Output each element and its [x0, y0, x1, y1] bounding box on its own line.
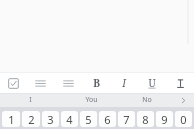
button[interactable]: 3 [42, 111, 59, 127]
button[interactable]: You [61, 93, 122, 107]
staticText: 9 [161, 112, 168, 127]
button[interactable]: No [122, 93, 172, 107]
button[interactable]: Italic [110, 73, 138, 93]
button[interactable]: I [0, 93, 61, 107]
button[interactable]: 0 [175, 111, 192, 127]
staticText: I [122, 76, 126, 90]
staticText: 3 [47, 112, 54, 127]
button[interactable]: 6 [99, 111, 116, 127]
button[interactable]: More suggestions [172, 93, 194, 107]
staticText: 5 [85, 112, 92, 127]
button[interactable]: Text format [166, 73, 194, 93]
staticText: 1 [8, 112, 15, 127]
staticText: You [85, 95, 98, 105]
staticText: No [142, 95, 152, 105]
button[interactable]: 5 [80, 111, 97, 127]
staticText: 4 [66, 112, 73, 127]
staticText: I [29, 95, 32, 105]
staticText: B [93, 76, 100, 90]
button[interactable]: Bulleted list [27, 73, 54, 93]
staticText: 7 [123, 112, 130, 127]
staticText: 6 [104, 112, 111, 127]
staticText: 0 [180, 112, 187, 127]
button[interactable]: 8 [137, 111, 154, 127]
staticText: U [148, 76, 156, 90]
button[interactable]: Underline [138, 73, 166, 93]
button[interactable]: 7 [118, 111, 135, 127]
button[interactable]: 2 [22, 111, 40, 127]
button[interactable]: 9 [156, 111, 173, 127]
button[interactable]: 4 [61, 111, 78, 127]
staticText: 2 [28, 112, 35, 127]
button[interactable]: Bold [82, 73, 110, 93]
staticText: 8 [142, 112, 149, 127]
button[interactable]: Checklist [0, 73, 27, 93]
button[interactable]: Numbered list [54, 73, 82, 93]
button[interactable]: 1 [2, 111, 20, 127]
